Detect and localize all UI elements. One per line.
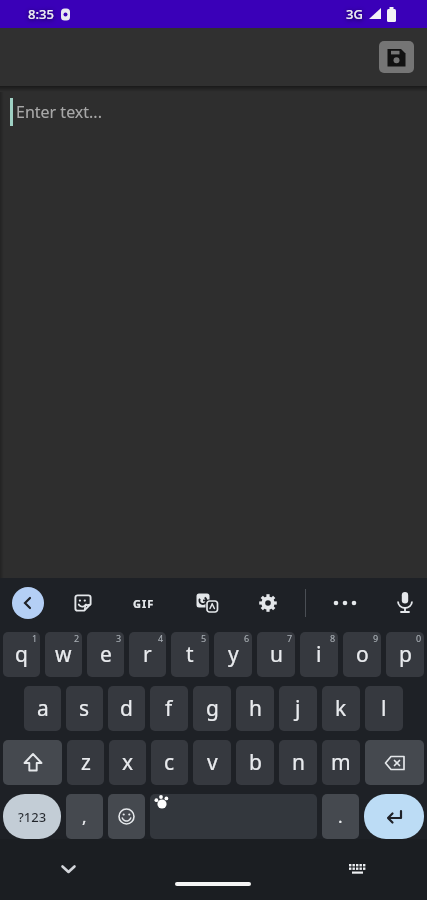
button[interactable]: r xyxy=(129,632,166,677)
staticText: i xyxy=(316,640,322,669)
staticText: 7 xyxy=(287,632,293,644)
button[interactable]: f xyxy=(150,686,188,731)
staticText: 4 xyxy=(158,632,164,644)
staticText: 3 xyxy=(116,632,122,644)
button[interactable]: a xyxy=(24,686,61,731)
button[interactable]: j xyxy=(279,686,317,731)
button[interactable]: ?123 xyxy=(3,794,61,839)
staticText: GIF xyxy=(133,596,155,611)
staticText: j xyxy=(295,694,301,723)
staticText: n xyxy=(292,748,305,777)
staticText: 3G xyxy=(346,5,363,23)
button[interactable] xyxy=(175,882,251,886)
staticText: . xyxy=(338,805,343,828)
button[interactable] xyxy=(258,593,278,613)
button[interactable]: o xyxy=(343,632,381,677)
staticText: , xyxy=(82,805,87,828)
staticText: ?123 xyxy=(18,808,47,826)
button[interactable]: n xyxy=(279,740,317,785)
staticText: z xyxy=(81,748,91,777)
staticText: 8:35 xyxy=(28,5,54,23)
staticText: s xyxy=(79,694,90,723)
staticText: w xyxy=(55,640,72,669)
staticText: 8 xyxy=(330,632,336,644)
button[interactable]: . xyxy=(322,794,359,839)
button[interactable]: p xyxy=(386,632,424,677)
staticText: h xyxy=(249,694,262,723)
staticText: q xyxy=(15,640,28,669)
button[interactable]: d xyxy=(108,686,145,731)
button[interactable]: Enter text... xyxy=(10,98,427,126)
button[interactable] xyxy=(396,591,414,615)
staticText: 6 xyxy=(244,632,250,644)
button[interactable]: x xyxy=(109,740,146,785)
button[interactable]: w xyxy=(45,632,82,677)
staticText: 5 xyxy=(201,632,207,644)
staticText: 9 xyxy=(373,632,379,644)
staticText: t xyxy=(186,640,194,669)
button[interactable]: s xyxy=(66,686,103,731)
button[interactable]: g xyxy=(193,686,231,731)
button[interactable]: u xyxy=(257,632,295,677)
staticText: r xyxy=(143,640,152,669)
staticText: u xyxy=(270,640,283,669)
button[interactable]: k xyxy=(322,686,360,731)
button[interactable] xyxy=(365,740,424,785)
button[interactable] xyxy=(61,865,76,874)
staticText: 1 xyxy=(32,632,38,644)
staticText: p xyxy=(399,640,412,669)
staticText: e xyxy=(100,640,112,669)
button[interactable] xyxy=(196,593,219,613)
button[interactable] xyxy=(379,41,414,73)
staticText: v xyxy=(207,748,218,777)
button[interactable] xyxy=(332,599,358,607)
button[interactable]: , xyxy=(66,794,103,839)
staticText: Enter text... xyxy=(16,101,102,123)
button[interactable]: z xyxy=(67,740,104,785)
button[interactable] xyxy=(364,794,424,839)
staticText: b xyxy=(249,748,262,777)
staticText: c xyxy=(164,748,175,777)
staticText: y xyxy=(228,640,239,669)
button[interactable] xyxy=(108,794,145,839)
button[interactable] xyxy=(73,593,93,613)
button[interactable]: h xyxy=(236,686,274,731)
button[interactable] xyxy=(12,587,44,619)
button[interactable] xyxy=(3,740,62,785)
staticText: f xyxy=(165,694,173,723)
button[interactable]: i xyxy=(300,632,338,677)
button[interactable]: t xyxy=(171,632,209,677)
staticText: m xyxy=(331,748,351,777)
button[interactable]: GIF xyxy=(127,592,161,614)
button[interactable]: q xyxy=(3,632,40,677)
button[interactable]: e xyxy=(87,632,124,677)
staticText: g xyxy=(206,694,219,723)
staticText: k xyxy=(335,694,347,723)
staticText: 0 xyxy=(416,632,422,644)
button[interactable] xyxy=(348,863,367,877)
button[interactable]: l xyxy=(365,686,403,731)
button[interactable]: m xyxy=(322,740,360,785)
button[interactable]: y xyxy=(214,632,252,677)
button[interactable]: v xyxy=(193,740,231,785)
button[interactable] xyxy=(150,794,317,839)
staticText: 2 xyxy=(74,632,80,644)
staticText: o xyxy=(356,640,369,669)
staticText: x xyxy=(122,748,134,777)
staticText: a xyxy=(37,694,49,723)
button[interactable]: c xyxy=(151,740,188,785)
button[interactable]: b xyxy=(236,740,274,785)
staticText: l xyxy=(381,694,387,723)
staticText: d xyxy=(120,694,133,723)
